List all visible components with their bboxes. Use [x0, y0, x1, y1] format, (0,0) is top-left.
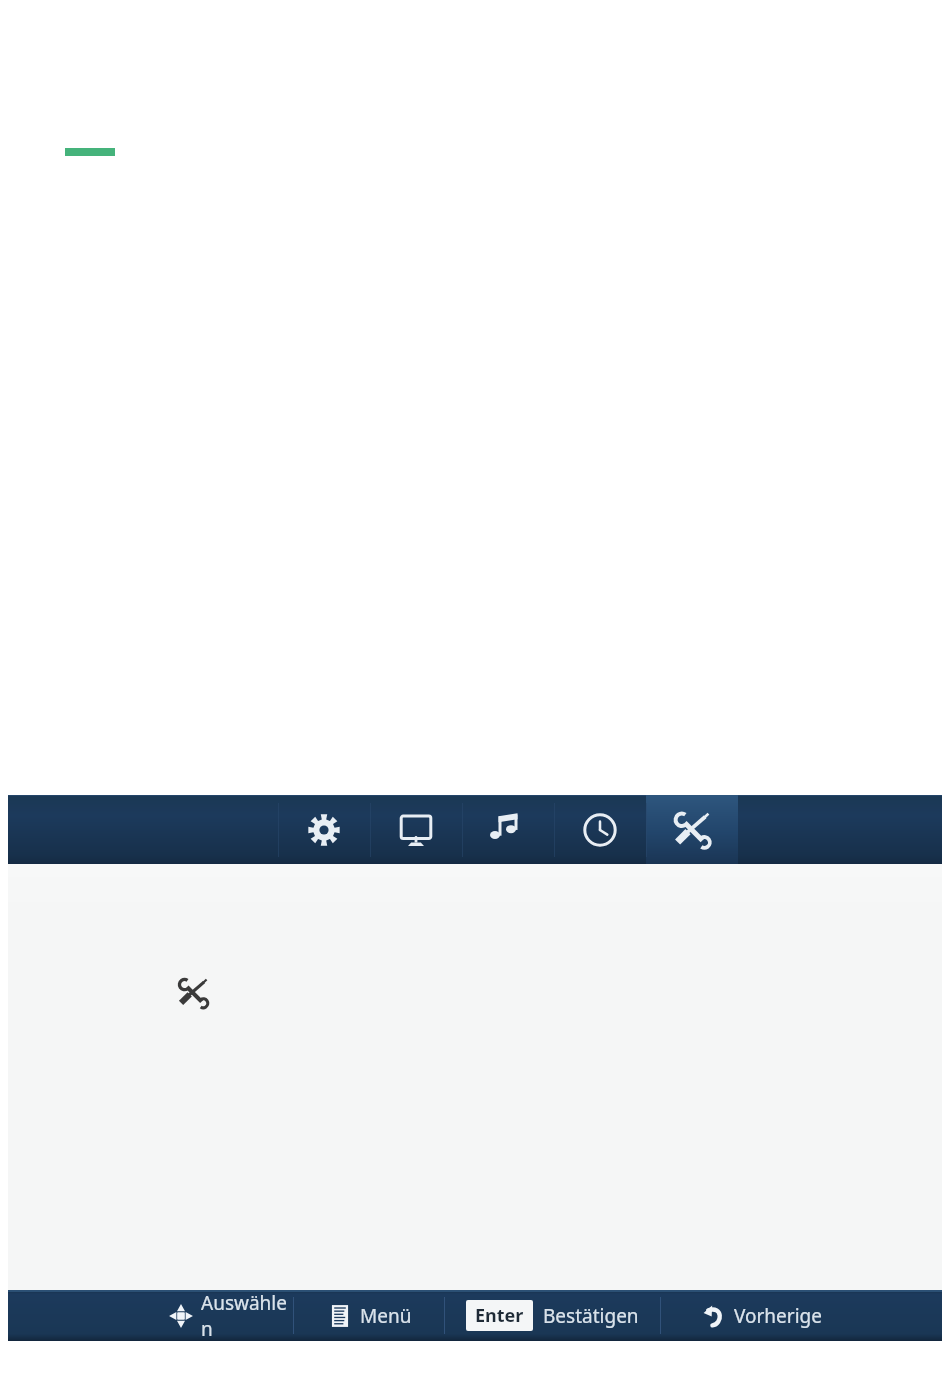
- button[interactable]: Enter: [445, 1290, 660, 1341]
- button[interactable]: Anzeige: [370, 795, 462, 864]
- button[interactable]: Einstellungen: [278, 795, 370, 864]
- staticText: Menü: [360, 1303, 412, 1329]
- button[interactable]: Musik: [462, 795, 554, 864]
- button[interactable]: Uhr: [554, 795, 646, 864]
- button[interactable]: Auswählen: [168, 1290, 293, 1341]
- staticText: Enter: [475, 1303, 524, 1328]
- staticText: Auswählen: [201, 1290, 293, 1341]
- button[interactable]: Vorherige: [661, 1290, 861, 1341]
- button[interactable]: Menü: [294, 1290, 444, 1341]
- button[interactable]: Werkzeuge: [170, 970, 216, 1016]
- staticText: Vorherige: [734, 1303, 822, 1329]
- staticText: Bestätigen: [543, 1303, 639, 1329]
- button[interactable]: Werkzeuge: [646, 795, 738, 864]
